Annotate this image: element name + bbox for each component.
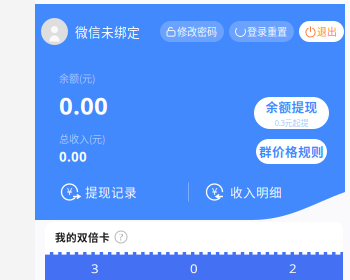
staticText: 修改密码 bbox=[177, 24, 217, 39]
staticText: 0.00 bbox=[59, 148, 87, 165]
button[interactable]: ¥ bbox=[189, 181, 333, 203]
button[interactable]: 余额提现 bbox=[254, 97, 329, 129]
button[interactable]: 退出 bbox=[299, 21, 344, 42]
staticText: 0.3元起提 bbox=[274, 117, 308, 128]
staticText: 退出 bbox=[317, 24, 337, 39]
staticText: 登录重置 bbox=[247, 24, 287, 39]
staticText: 微信未绑定 bbox=[75, 22, 140, 41]
staticText: 余额(元) bbox=[59, 71, 95, 85]
button[interactable]: ¥ bbox=[59, 181, 188, 203]
button[interactable]: 登录重置 bbox=[229, 21, 294, 42]
button[interactable]: 修改密码 bbox=[160, 21, 224, 42]
staticText: ¥ bbox=[66, 186, 72, 197]
staticText: ? bbox=[119, 231, 123, 243]
staticText: 0.00 bbox=[59, 89, 108, 121]
staticText: 0 bbox=[190, 259, 198, 277]
staticText: 余额提现 bbox=[265, 98, 317, 116]
staticText: 群价格规则 bbox=[259, 142, 324, 161]
staticText: 收入明细 bbox=[230, 183, 282, 201]
staticText: 总收入(元) bbox=[59, 131, 105, 146]
staticText: ¥ bbox=[211, 186, 217, 197]
staticText: 3 bbox=[91, 259, 99, 277]
button[interactable]: 群价格规则 bbox=[256, 139, 327, 164]
staticText: 2 bbox=[289, 259, 297, 277]
staticText: 我的双倍卡 bbox=[55, 229, 110, 245]
staticText: 提现记录 bbox=[85, 183, 137, 201]
button[interactable]: 帮助 bbox=[115, 231, 127, 243]
